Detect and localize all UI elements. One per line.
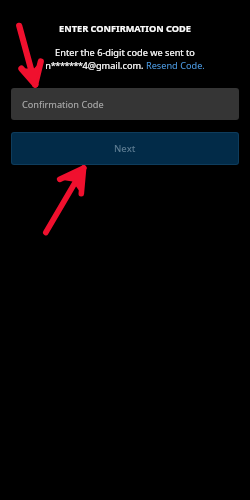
- button[interactable]: Next: [11, 132, 239, 165]
- button[interactable]: Resend Code: [148, 60, 203, 72]
- staticText: Enter the 6-digit code we sent to n*****…: [45, 46, 205, 72]
- button[interactable]: Confirmation Code: [11, 88, 239, 120]
- staticText: Confirmation Code: [22, 98, 104, 111]
- staticText: ENTER CONFIRMATION CODE: [59, 22, 191, 35]
- staticText: Next: [114, 142, 136, 155]
